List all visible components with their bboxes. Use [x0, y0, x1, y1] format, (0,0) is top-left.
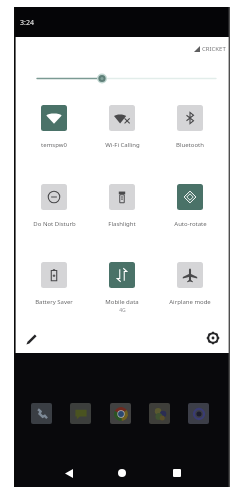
staticText: Flashlight: [108, 220, 136, 228]
staticText: Wi-Fi Calling: [105, 141, 140, 149]
button[interactable]: Camera: [188, 403, 209, 424]
button[interactable]: Messages: [70, 403, 91, 424]
button[interactable]: Mobile data: [88, 262, 156, 314]
button[interactable]: Bluetooth: [156, 105, 224, 157]
button[interactable]: Wi-Fi Calling: [88, 105, 156, 157]
button[interactable]: Auto-rotate: [156, 184, 224, 236]
staticText: Auto-rotate: [174, 220, 207, 228]
staticText: CRICKET: [202, 45, 226, 53]
button[interactable]: Home: [110, 461, 134, 485]
staticText: Battery Saver: [35, 298, 73, 306]
button[interactable]: Do Not Disturb: [20, 184, 88, 236]
staticText: Bluetooth: [176, 141, 204, 149]
button[interactable]: Edit quick settings: [20, 328, 42, 350]
button[interactable]: Recent apps: [165, 461, 189, 485]
staticText: 4G: [119, 307, 126, 314]
button[interactable]: Back: [57, 461, 81, 485]
button[interactable]: Settings: [202, 327, 224, 349]
button[interactable]: Airplane mode: [156, 262, 224, 314]
staticText: 3:24: [20, 18, 34, 28]
button[interactable]: Chrome: [110, 403, 131, 424]
staticText: temspw0: [41, 141, 67, 149]
button[interactable]: Battery Saver: [20, 262, 88, 314]
button[interactable]: Flashlight: [88, 184, 156, 236]
staticText: Do Not Disturb: [33, 220, 76, 228]
staticText: Mobile data: [105, 298, 139, 306]
button[interactable]: temspw0: [20, 105, 88, 157]
button[interactable]: Phone: [31, 403, 52, 424]
staticText: Airplane mode: [169, 298, 211, 306]
button[interactable]: Photos: [149, 403, 170, 424]
